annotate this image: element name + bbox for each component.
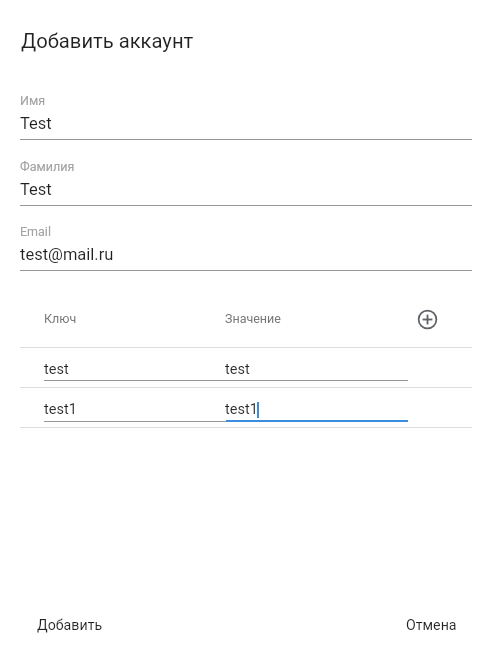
button[interactable]: test1 <box>44 392 226 427</box>
staticText: Значение <box>225 311 281 326</box>
button[interactable]: Add parameter <box>413 305 442 334</box>
button[interactable]: test <box>44 352 225 387</box>
button[interactable]: Имя <box>20 88 472 140</box>
button[interactable]: test <box>225 352 408 387</box>
staticText: Имя <box>20 93 46 108</box>
staticText: test1 <box>44 401 77 418</box>
staticText: test@mail.ru <box>20 245 114 264</box>
button[interactable]: Отмена <box>392 608 471 643</box>
button[interactable]: Фамилия <box>20 154 472 206</box>
button[interactable]: test1 <box>225 392 408 427</box>
staticText: test1 <box>225 401 258 418</box>
button[interactable]: Добавить <box>23 608 117 643</box>
staticText: Email <box>20 224 51 239</box>
staticText: Фамилия <box>20 159 75 174</box>
staticText: Добавить <box>37 617 103 634</box>
staticText: Test <box>20 114 52 133</box>
staticText: test <box>225 361 250 378</box>
staticText: Ключ <box>44 311 77 326</box>
staticText: Добавить аккаунт <box>21 29 194 53</box>
staticText: Test <box>20 180 52 199</box>
staticText: Отмена <box>406 617 457 634</box>
staticText: test <box>44 361 69 378</box>
button[interactable]: Email <box>20 219 472 271</box>
